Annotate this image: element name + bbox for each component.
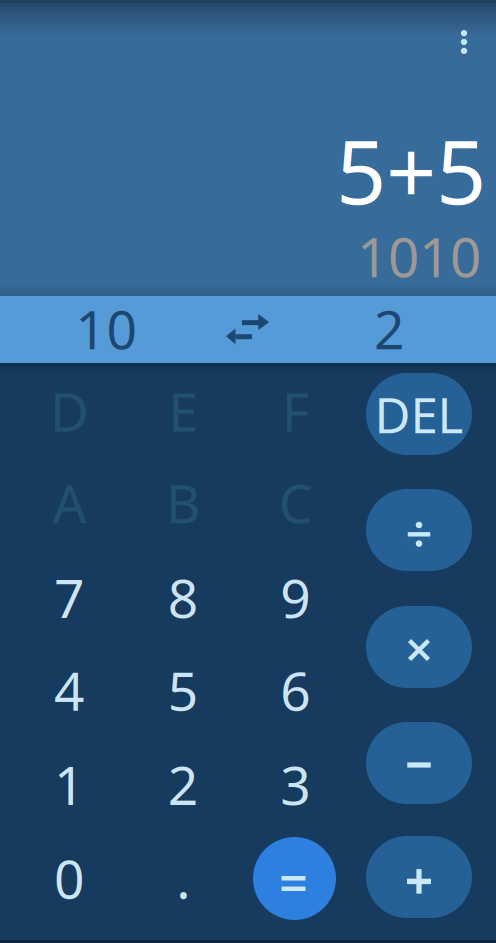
staticText: 1 [54,749,85,820]
button[interactable]: 0 [13,832,125,924]
button[interactable]: Multiply [366,606,472,688]
staticText: 9 [280,562,311,633]
staticText: C [279,467,313,538]
button[interactable]: 2 [283,296,496,363]
button[interactable]: 1 [13,738,125,830]
staticText: 7 [54,562,85,633]
button[interactable]: B [127,457,239,549]
button[interactable]: 7 [13,551,125,643]
staticText: E [168,375,198,446]
staticText: 0 [54,843,85,913]
button[interactable]: 2 [127,738,239,830]
button[interactable]: Subtract [366,722,472,804]
button[interactable]: 10 [0,296,213,363]
staticText: 5 [168,655,199,725]
button[interactable]: 9 [240,551,352,643]
staticText: F [282,375,310,446]
staticText: 1010 [357,220,481,292]
staticText: 3 [280,749,311,820]
staticText: 6 [280,655,311,725]
staticText: A [52,467,86,538]
button[interactable]: 3 [240,738,352,830]
staticText: 4 [54,655,85,725]
staticText: D [50,375,89,446]
button[interactable]: 8 [127,551,239,643]
button[interactable]: 5 [127,644,239,736]
button[interactable]: More options [438,16,490,68]
button[interactable]: A [13,457,125,549]
button[interactable]: E [127,365,239,457]
staticText: 2 [168,749,199,820]
staticText: DEL [374,381,463,447]
staticText: 5+5 [336,112,486,228]
button[interactable]: 6 [240,644,352,736]
button[interactable]: . [127,832,239,924]
button[interactable]: C [240,457,352,549]
button[interactable]: Equals [253,837,336,920]
button[interactable]: D [13,365,125,457]
staticText: 8 [168,562,199,633]
button[interactable]: Divide [366,489,472,571]
button[interactable]: Add [366,836,472,918]
staticText: . [176,843,190,913]
staticText: 2 [374,293,405,364]
staticText: 10 [75,293,137,364]
button[interactable]: 4 [13,644,125,736]
staticText: B [166,467,201,538]
button[interactable]: F [240,365,352,457]
button[interactable]: Swap number bases [213,296,283,363]
button[interactable]: DEL [366,373,472,455]
